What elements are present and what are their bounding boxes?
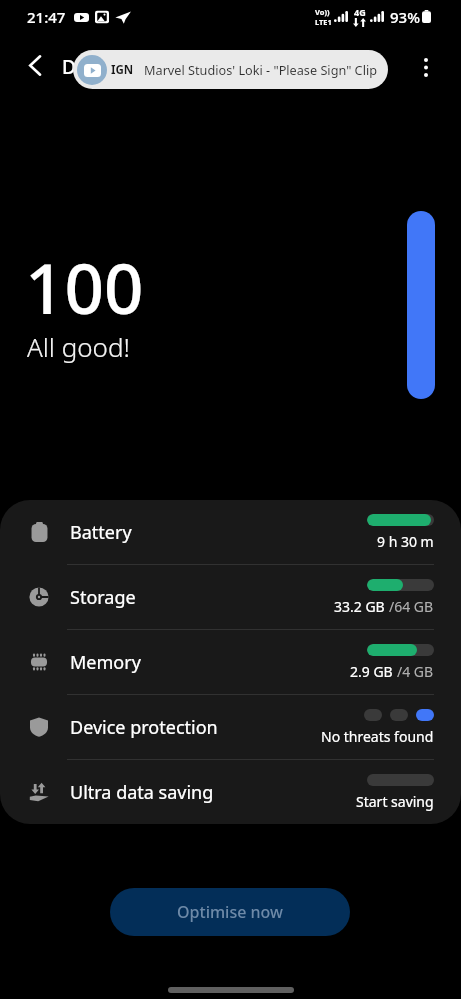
button[interactable]: Ultra data saving xyxy=(0,760,461,824)
staticText: All good! xyxy=(27,329,130,364)
button[interactable]: Storage xyxy=(0,565,461,629)
button[interactable]: IGN xyxy=(73,50,388,89)
button[interactable]: Optimise now xyxy=(110,888,350,936)
staticText: IGN xyxy=(111,62,134,78)
staticText: Vo)) xyxy=(315,7,330,17)
staticText: /64 GB xyxy=(389,597,434,616)
staticText: 33.2 GB xyxy=(334,597,389,616)
staticText: Ultra data saving xyxy=(70,780,214,805)
button[interactable]: More options xyxy=(404,45,448,89)
button[interactable]: Battery xyxy=(0,500,461,564)
staticText: Storage xyxy=(70,585,136,610)
staticText: No threats found xyxy=(321,727,434,746)
button[interactable]: Back xyxy=(13,43,57,87)
staticText: 21:47 xyxy=(27,7,66,27)
staticText: 2.9 GB xyxy=(350,662,397,681)
staticText: LTE1 xyxy=(315,17,332,27)
staticText: Battery xyxy=(70,520,132,545)
staticText: Device protection xyxy=(70,715,218,740)
staticText: Memory xyxy=(70,650,141,675)
staticText: 9 h 30 m xyxy=(377,532,434,551)
staticText: /4 GB xyxy=(397,662,434,681)
staticText: Start saving xyxy=(356,792,434,811)
staticText: 4G xyxy=(354,6,366,18)
staticText: 93% xyxy=(390,7,420,27)
staticText: 100 xyxy=(25,240,144,334)
staticText: Optimise now xyxy=(177,901,283,923)
staticText: Marvel Studios' Loki - "Please Sign" Cli… xyxy=(144,61,377,78)
button[interactable]: Device protection xyxy=(0,695,461,759)
button[interactable]: Memory xyxy=(0,630,461,694)
staticText: Device care xyxy=(62,54,166,80)
